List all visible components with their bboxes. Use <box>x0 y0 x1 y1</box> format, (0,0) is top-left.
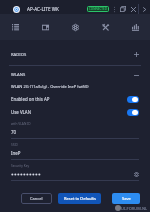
button[interactable]: Enabled on this AP <box>11 95 139 103</box>
button[interactable]: Devices <box>30 14 60 40</box>
staticText: CONNECTED <box>89 7 107 11</box>
button[interactable]: Save <box>112 193 140 204</box>
button[interactable]: Network <box>60 14 90 40</box>
staticText: Save <box>122 196 131 201</box>
button[interactable]: Show password <box>133 171 139 177</box>
button[interactable]: Use VLAN <box>11 108 139 116</box>
staticText: 70 <box>11 129 17 135</box>
staticText: RADIOS <box>11 52 27 58</box>
staticText: Reset to Defaults <box>64 196 96 201</box>
button[interactable]: CONNECTED <box>87 6 109 12</box>
button[interactable]: RADIOS <box>11 44 139 65</box>
staticText: SSID <box>11 143 18 147</box>
staticText: Security Key <box>11 164 30 168</box>
button[interactable]: Cancel <box>21 193 52 204</box>
staticText: IneP <box>11 150 21 156</box>
button[interactable]: Overview <box>0 14 30 40</box>
button[interactable]: Reset to Defaults <box>58 193 101 204</box>
button[interactable]: Tools <box>90 14 120 40</box>
button[interactable]: Duplicate <box>118 4 128 14</box>
staticText: Use VLAN <box>11 109 32 115</box>
button[interactable]: More options <box>111 6 118 13</box>
staticText: WLANS <box>11 72 26 78</box>
button[interactable]: Expand <box>139 4 150 14</box>
staticText: Cancel <box>30 196 43 201</box>
button[interactable]: WLANS <box>11 66 139 84</box>
staticText: AP-AC-LITE WK <box>27 6 59 12</box>
staticText: UI-FORUM.NL <box>121 206 148 211</box>
staticText: with VLAN ID <box>11 122 31 126</box>
staticText: WLAN 2G (11a/b/g) - Override IneP (wifi0… <box>11 84 89 89</box>
button[interactable]: Statistics <box>120 14 150 40</box>
button[interactable]: Close <box>128 4 138 14</box>
staticText: Enabled on this AP <box>11 96 50 102</box>
